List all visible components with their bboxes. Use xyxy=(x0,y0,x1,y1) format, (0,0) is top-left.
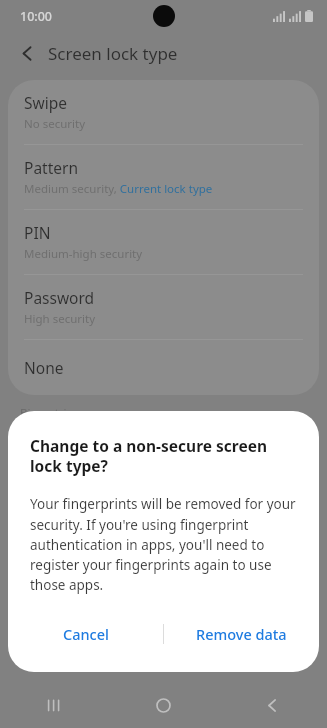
staticText: 10:00 xyxy=(20,8,53,25)
button[interactable]: Back xyxy=(218,682,327,728)
button[interactable]: Swipe xyxy=(8,80,319,144)
staticText: Pattern xyxy=(24,157,78,178)
staticText: Face xyxy=(24,448,269,469)
button[interactable]: Face xyxy=(8,429,319,487)
staticText: Medium security, Current lock type xyxy=(24,181,213,197)
staticText: Your fingerprints will be removed for yo… xyxy=(30,495,297,594)
staticText: No security xyxy=(24,116,86,132)
button[interactable]: Remove data xyxy=(164,612,319,656)
staticText: High security xyxy=(24,311,96,327)
button[interactable]: Fingerprints xyxy=(8,488,319,546)
staticText: Swipe xyxy=(24,92,67,113)
button[interactable]: PIN xyxy=(8,210,319,274)
staticText: Remove data xyxy=(196,624,287,644)
staticText: Password xyxy=(24,287,95,308)
button[interactable]: Password xyxy=(8,275,319,339)
staticText: None xyxy=(24,357,64,378)
button[interactable]: Cancel xyxy=(8,612,163,656)
staticText: Change to a non-secure screen lock type? xyxy=(30,435,297,477)
staticText: Fingerprints xyxy=(24,507,269,528)
button[interactable]: Pattern xyxy=(8,145,319,209)
button[interactable]: Back xyxy=(8,34,46,72)
staticText: Biometrics xyxy=(20,405,78,421)
button[interactable]: None xyxy=(8,340,319,395)
staticText: Cancel xyxy=(63,624,109,644)
button[interactable]: Recents xyxy=(0,682,109,728)
staticText: Screen lock type xyxy=(48,42,178,65)
staticText: Medium-high security xyxy=(24,246,143,262)
button[interactable]: Home xyxy=(109,682,218,728)
staticText: PIN xyxy=(24,222,51,243)
